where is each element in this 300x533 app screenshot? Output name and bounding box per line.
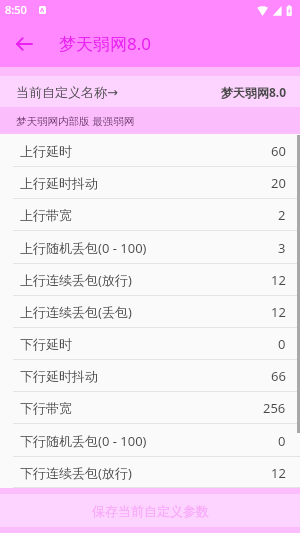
button[interactable]: Back [0, 20, 47, 67]
staticText: 2 [278, 206, 286, 224]
button[interactable]: 上行延时抖动 [0, 167, 300, 199]
button[interactable]: 当前自定义名称→ [0, 76, 300, 107]
button[interactable]: 上行连续丢包(丢包) [0, 296, 300, 328]
staticText: 上行随机丢包(0 - 100) [20, 239, 147, 257]
staticText: 12 [271, 303, 286, 321]
button[interactable]: 上行带宽 [0, 199, 300, 231]
button[interactable]: 下行延时抖动 [0, 360, 300, 392]
button[interactable]: 下行延时 [0, 328, 300, 360]
staticText: 0 [278, 432, 286, 450]
staticText: 256 [263, 399, 286, 417]
staticText: 上行连续丢包(丢包) [20, 303, 132, 321]
staticText: 上行带宽 [20, 207, 72, 223]
staticText: 梦天弱网内部版 最强弱网 [16, 114, 135, 128]
staticText: 上行延时 [20, 143, 72, 159]
staticText: 12 [271, 271, 286, 289]
staticText: 梦天弱网8.0 [221, 84, 287, 100]
button[interactable]: 上行随机丢包(0 - 100) [0, 231, 300, 264]
staticText: 当前自定义名称→ [16, 84, 118, 100]
staticText: 梦天弱网8.0 [59, 32, 152, 55]
staticText: A [40, 6, 45, 14]
staticText: 上行连续丢包(放行) [20, 271, 132, 289]
button[interactable]: 上行连续丢包(放行) [0, 264, 300, 296]
button[interactable]: 下行带宽 [0, 392, 300, 424]
button[interactable]: 上行延时 [0, 134, 300, 167]
staticText: 66 [271, 367, 286, 385]
staticText: 下行连续丢包(放行) [20, 464, 132, 482]
staticText: 12 [271, 464, 286, 482]
staticText: 下行带宽 [20, 400, 72, 416]
button[interactable]: 保存当前自定义参数 [0, 494, 300, 527]
staticText: 下行延时 [20, 336, 72, 352]
staticText: 0 [278, 335, 286, 353]
staticText: 上行延时抖动 [20, 175, 98, 191]
button[interactable]: 下行连续丢包(放行) [0, 457, 300, 488]
staticText: 60 [271, 142, 286, 160]
staticText: 20 [271, 174, 286, 192]
staticText: 下行延时抖动 [20, 368, 98, 384]
staticText: 3 [278, 239, 286, 257]
staticText: 下行随机丢包(0 - 100) [20, 432, 147, 450]
button[interactable]: 下行随机丢包(0 - 100) [0, 424, 300, 457]
staticText: 保存当前自定义参数 [92, 503, 209, 519]
staticText: 8:50 [5, 2, 27, 17]
